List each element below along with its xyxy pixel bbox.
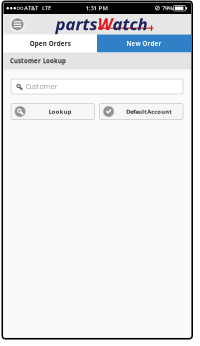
staticText: parts: [55, 12, 97, 35]
staticText: Default Account: [126, 108, 171, 115]
staticText: LTE: [42, 4, 51, 12]
button[interactable]: Open Orders: [3, 34, 97, 52]
button[interactable]: Menu: [7, 14, 28, 34]
staticText: New Order: [126, 39, 161, 48]
staticText: Open Orders: [30, 39, 71, 48]
staticText: Customer: [25, 81, 57, 91]
staticText: Customer Lookup: [10, 57, 66, 65]
staticText: AT&T: [24, 4, 38, 12]
staticText: Lookup: [49, 108, 72, 115]
staticText: W: [97, 12, 112, 35]
button[interactable]: Default Account: [99, 103, 183, 119]
staticText: 1:31 PM: [85, 4, 108, 12]
button[interactable]: New Order: [97, 34, 191, 52]
staticText: 79%: [162, 4, 173, 12]
staticText: atch: [112, 12, 147, 35]
button[interactable]: Lookup: [11, 103, 94, 119]
